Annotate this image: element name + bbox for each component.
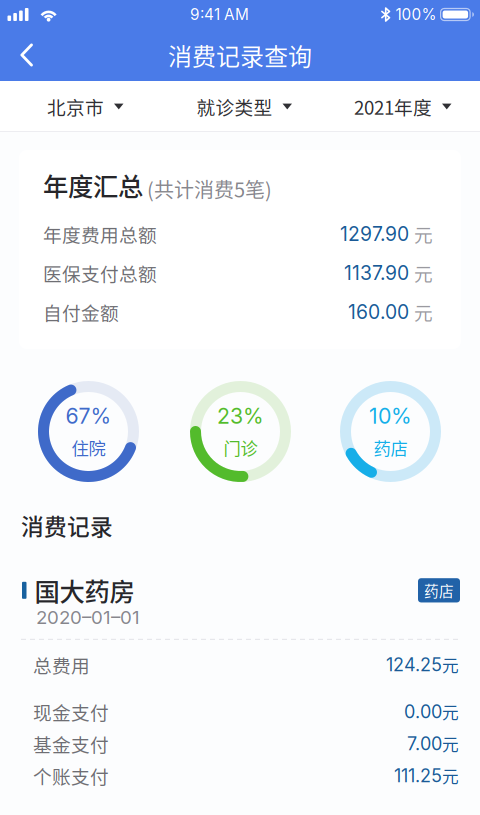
staticText: 元 <box>414 298 433 325</box>
staticText: 2020–01–01 <box>36 606 140 629</box>
staticText: 100% <box>396 5 437 24</box>
staticText: 67% <box>65 403 111 429</box>
staticText: 个账支付 <box>33 762 109 789</box>
staticText: 消费记录查询 <box>168 38 312 72</box>
button[interactable]: 北京市 <box>0 81 123 132</box>
staticText: 元 <box>442 653 459 677</box>
staticText: 药店 <box>373 435 407 460</box>
staticText: 现金支付 <box>33 698 109 725</box>
staticText: 基金支付 <box>33 730 109 757</box>
staticText: 药店 <box>424 580 454 601</box>
staticText: 年度汇总 <box>43 167 143 203</box>
staticText: 国大药房 <box>34 572 134 609</box>
staticText: 7.00 <box>407 733 442 755</box>
button[interactable]: Back <box>0 29 49 80</box>
staticText: 23% <box>217 403 264 429</box>
staticText: 160.00 <box>348 300 409 324</box>
staticText: 元 <box>442 732 459 756</box>
staticText: 1297.90 <box>340 222 409 246</box>
staticText: 元 <box>442 700 459 724</box>
staticText: 124.25 <box>386 654 442 676</box>
staticText: 总费用 <box>33 651 90 678</box>
staticText: 就诊类型 <box>196 93 272 120</box>
staticText: 门诊 <box>223 435 257 460</box>
button[interactable]: 2021年度 <box>292 81 451 132</box>
staticText: 元 <box>414 259 433 286</box>
staticText: 1137.90 <box>344 261 409 285</box>
staticText: 医保支付总额 <box>43 259 157 286</box>
staticText: 自付金额 <box>43 298 119 325</box>
staticText: 元 <box>414 220 433 247</box>
staticText: 住院 <box>71 435 105 460</box>
staticText: 0.00 <box>404 701 442 723</box>
staticText: 2021年度 <box>354 93 432 120</box>
staticText: (共计消费5笔) <box>147 174 272 203</box>
staticText: 111.25 <box>394 765 442 787</box>
staticText: 元 <box>442 764 459 788</box>
staticText: 年度费用总额 <box>43 220 157 247</box>
staticText: 消费记录 <box>21 509 113 542</box>
staticText: 北京市 <box>47 93 104 120</box>
button[interactable]: 就诊类型 <box>123 81 292 132</box>
staticText: 10% <box>369 403 412 429</box>
staticText: 9:41 AM <box>190 5 249 24</box>
